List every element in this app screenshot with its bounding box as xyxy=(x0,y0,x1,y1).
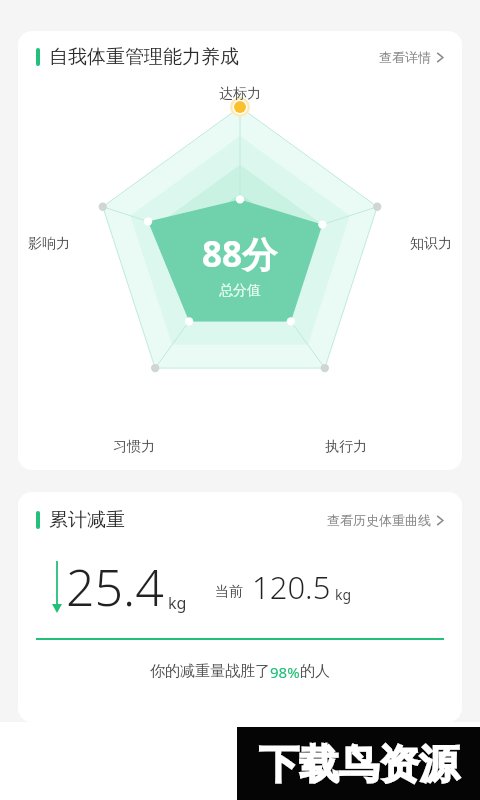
staticText: 执行力 xyxy=(325,438,367,456)
staticText: 累计减重 xyxy=(49,508,125,532)
button[interactable]: 查看详情 xyxy=(379,49,444,65)
button[interactable]: 查看历史体重曲线 xyxy=(327,512,444,528)
staticText: kg xyxy=(168,592,187,614)
staticText: 查看详情 xyxy=(379,49,431,65)
staticText: 总分值 xyxy=(219,282,261,300)
staticText: 影响力 xyxy=(28,235,70,253)
staticText: 知识力 xyxy=(410,235,452,253)
staticText: 你的减重量战胜了 xyxy=(150,662,270,681)
staticText: 98% xyxy=(270,662,300,682)
staticText: 查看历史体重曲线 xyxy=(327,512,431,528)
staticText: 自我体重管理能力养成 xyxy=(49,45,239,69)
staticText: 当前 xyxy=(215,583,243,601)
staticText: 习惯力 xyxy=(113,438,155,456)
staticText: 的人 xyxy=(300,662,330,681)
staticText: kg xyxy=(335,585,352,604)
staticText: 88分 xyxy=(202,230,278,278)
staticText: 下载鸟资源 xyxy=(259,739,459,789)
staticText: 25.4 xyxy=(66,553,164,621)
staticText: 120.5 xyxy=(252,566,331,608)
staticText: 达标力 xyxy=(219,85,261,103)
